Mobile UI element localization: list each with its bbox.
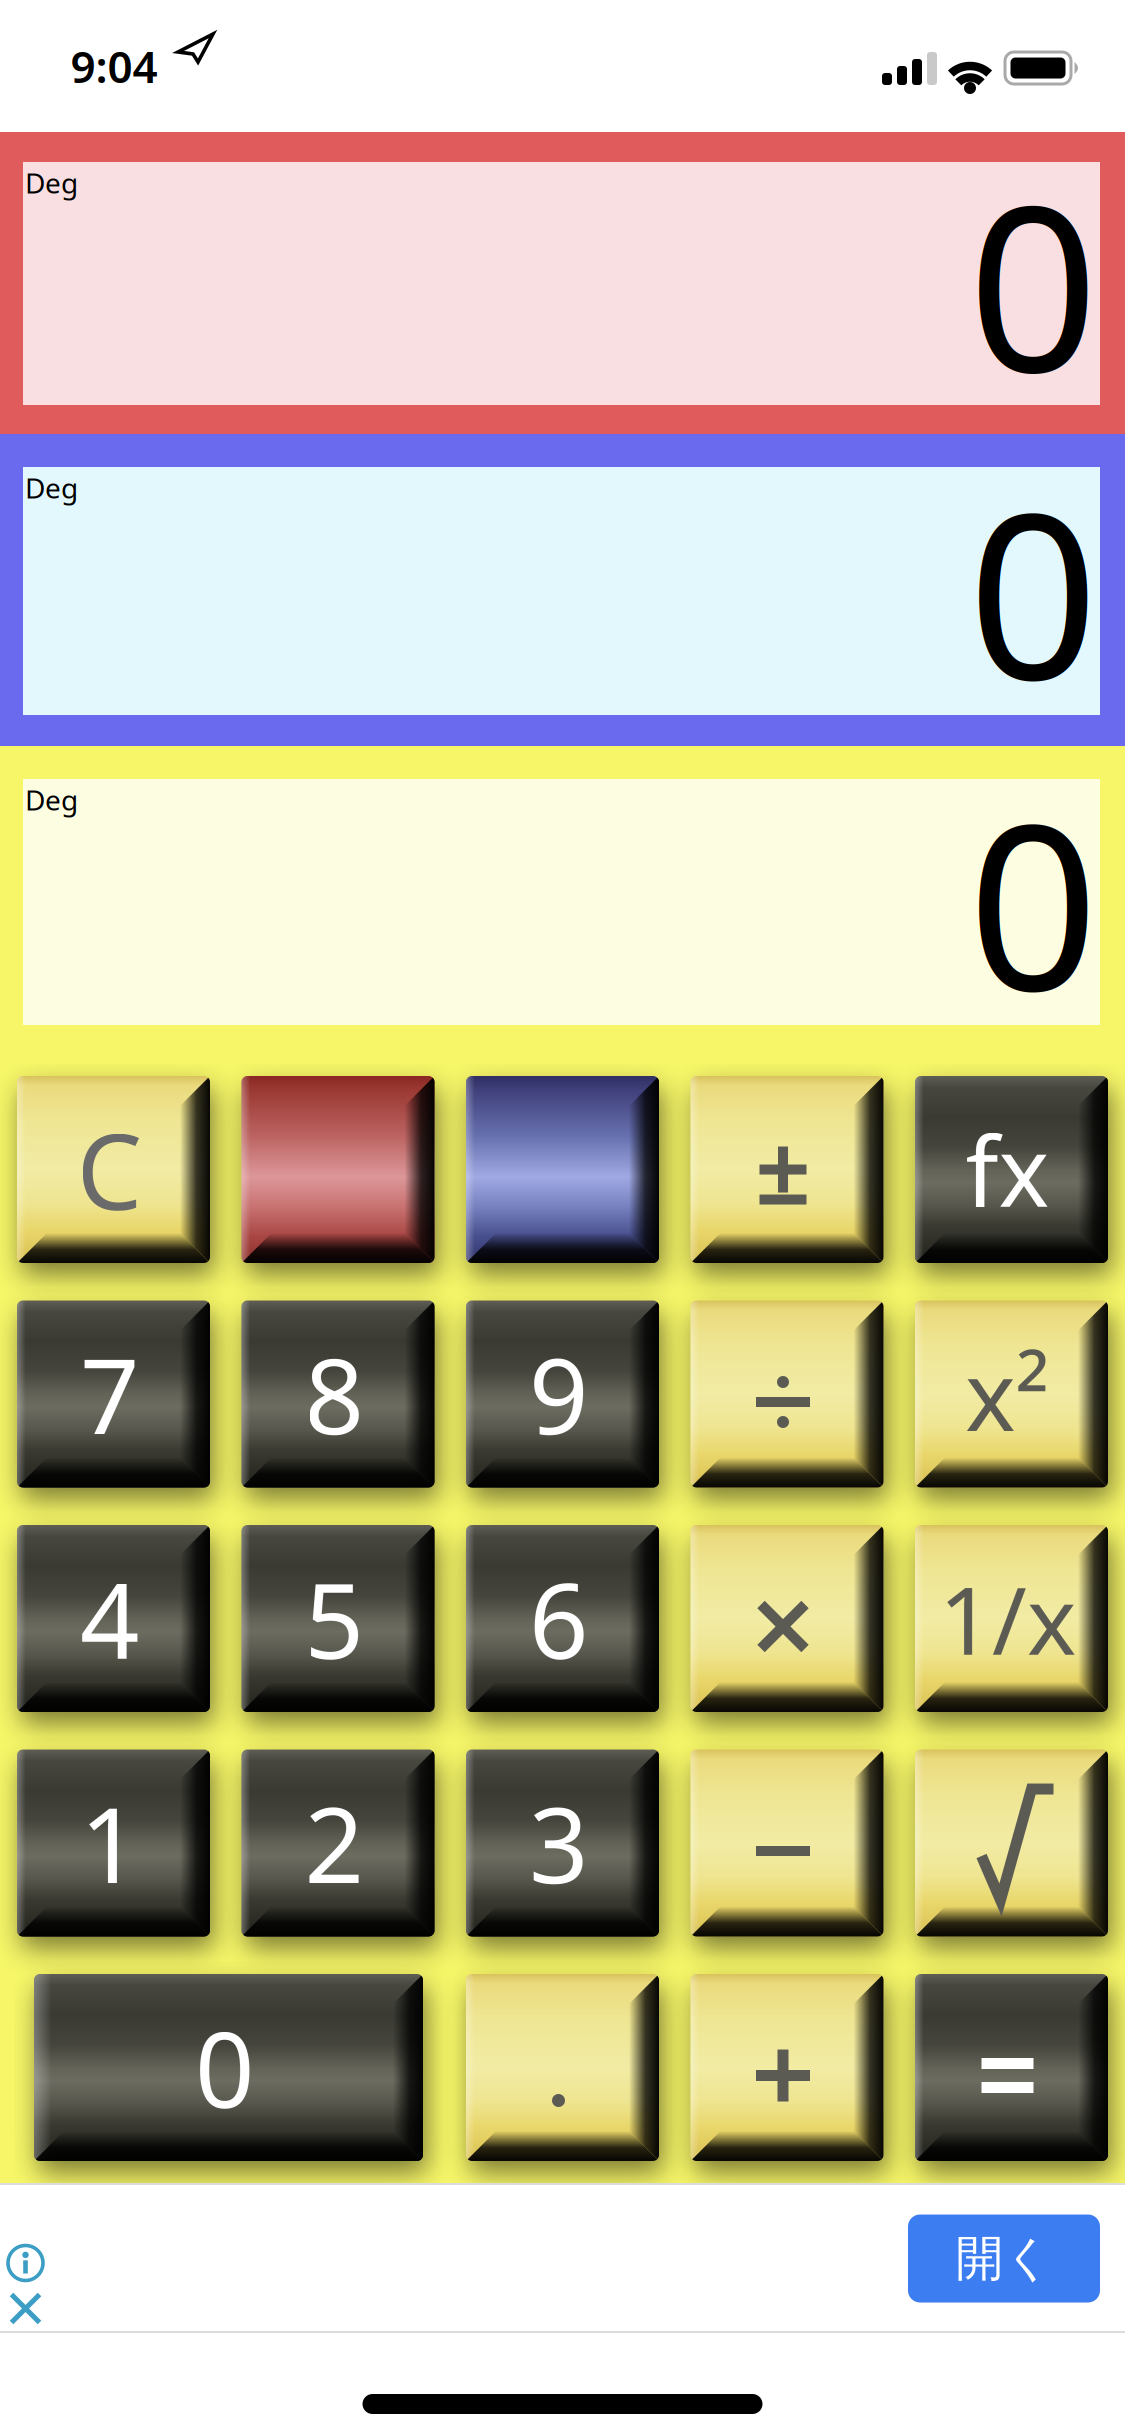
staticText: 開く <box>955 2229 1052 2288</box>
staticText: x² <box>965 1330 1050 1458</box>
staticText: 9 <box>529 1325 588 1463</box>
button[interactable] <box>690 1076 883 1263</box>
staticText: 7 <box>80 1325 139 1463</box>
staticText: fx <box>965 1106 1049 1233</box>
button[interactable]: 5 <box>241 1525 434 1712</box>
staticText: 5 <box>304 1549 363 1687</box>
staticText: 0 <box>968 751 1098 1053</box>
staticText: 6 <box>529 1549 588 1687</box>
button[interactable]: 8 <box>241 1300 434 1487</box>
button[interactable]: 1/x <box>915 1525 1108 1712</box>
button[interactable] <box>690 1749 883 1936</box>
button[interactable]: 3 <box>466 1749 659 1936</box>
button[interactable]: fx <box>915 1076 1108 1263</box>
staticText: 2 <box>304 1774 363 1912</box>
button[interactable] <box>690 1974 883 2161</box>
button[interactable] <box>915 1749 1108 1936</box>
button[interactable]: 9 <box>466 1300 659 1487</box>
button[interactable]: 2 <box>241 1749 434 1936</box>
button[interactable]: 6 <box>466 1525 659 1712</box>
staticText: 3 <box>529 1774 588 1912</box>
staticText: 0 <box>968 132 1098 435</box>
button[interactable] <box>241 1076 434 1263</box>
staticText: 1/x <box>939 1556 1076 1680</box>
button[interactable]: x² <box>915 1300 1108 1487</box>
staticText: Deg <box>25 469 78 506</box>
button[interactable]: 開く <box>908 2214 1100 2302</box>
staticText: C <box>76 1100 142 1238</box>
staticText: 4 <box>80 1549 139 1687</box>
staticText: 0 <box>968 440 1098 742</box>
button[interactable] <box>466 1974 659 2161</box>
button[interactable]: 4 <box>17 1525 210 1712</box>
button[interactable] <box>466 1076 659 1263</box>
button[interactable] <box>10 2293 41 2324</box>
button[interactable]: 0 <box>34 1974 423 2161</box>
button[interactable] <box>915 1974 1108 2161</box>
staticText: 9:04 <box>70 37 157 95</box>
button[interactable]: C <box>17 1076 210 1263</box>
button[interactable] <box>690 1525 883 1712</box>
staticText: 0 <box>195 1998 254 2136</box>
button[interactable]: 7 <box>17 1300 210 1487</box>
staticText: Deg <box>25 164 78 201</box>
button[interactable]: 1 <box>17 1749 210 1936</box>
button[interactable] <box>8 2245 43 2280</box>
staticText: 8 <box>304 1325 363 1463</box>
button[interactable] <box>690 1300 883 1487</box>
staticText: Deg <box>25 781 78 818</box>
staticText: 1 <box>80 1774 139 1912</box>
